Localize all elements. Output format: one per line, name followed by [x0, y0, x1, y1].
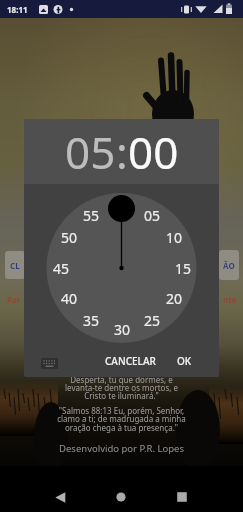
- staticText: oração chega à tua presença.": [0, 422, 243, 433]
- staticText: 15: [175, 259, 192, 275]
- staticText: 25: [144, 311, 161, 327]
- staticText: Cristo te iluminará.": [0, 390, 243, 401]
- staticText: "Salmos 88:13 Eu, porém, Senhor,: [0, 405, 243, 416]
- staticText: Desperta, tu que dormes, e: [0, 374, 243, 385]
- button[interactable]: OK: [170, 349, 198, 373]
- staticText: nte: [223, 294, 237, 305]
- button[interactable]: [166, 481, 198, 512]
- staticText: 05: [144, 206, 161, 222]
- staticText: ÃO: [223, 260, 235, 271]
- button[interactable]: [37, 353, 61, 373]
- staticText: 05: [65, 122, 116, 182]
- staticText: 10: [166, 228, 183, 244]
- staticText: 00: [128, 122, 179, 182]
- staticText: Desenvolvido por P.R. Lopes: [0, 442, 243, 455]
- button[interactable]: CL: [5, 251, 25, 279]
- staticText: levanta-te dentre os mortos, e: [0, 382, 243, 393]
- staticText: 30: [114, 320, 131, 336]
- staticText: :: [116, 122, 128, 182]
- staticText: CANCELAR: [105, 354, 156, 368]
- staticText: 40: [61, 289, 78, 305]
- button[interactable]: CANCELAR: [102, 349, 158, 373]
- staticText: CL: [10, 260, 20, 271]
- button[interactable]: ÃO: [219, 250, 239, 280]
- button[interactable]: [44, 481, 76, 512]
- staticText: 35: [83, 311, 100, 327]
- staticText: 20: [166, 289, 183, 305]
- staticText: Par: [7, 294, 21, 305]
- staticText: clamo a ti; de madrugada a minha: [0, 413, 243, 424]
- staticText: 18:11: [7, 4, 28, 15]
- staticText: OK: [177, 354, 192, 368]
- staticText: 55: [83, 206, 100, 222]
- staticText: 45: [53, 259, 70, 275]
- button[interactable]: [105, 481, 137, 512]
- staticText: 50: [61, 228, 78, 244]
